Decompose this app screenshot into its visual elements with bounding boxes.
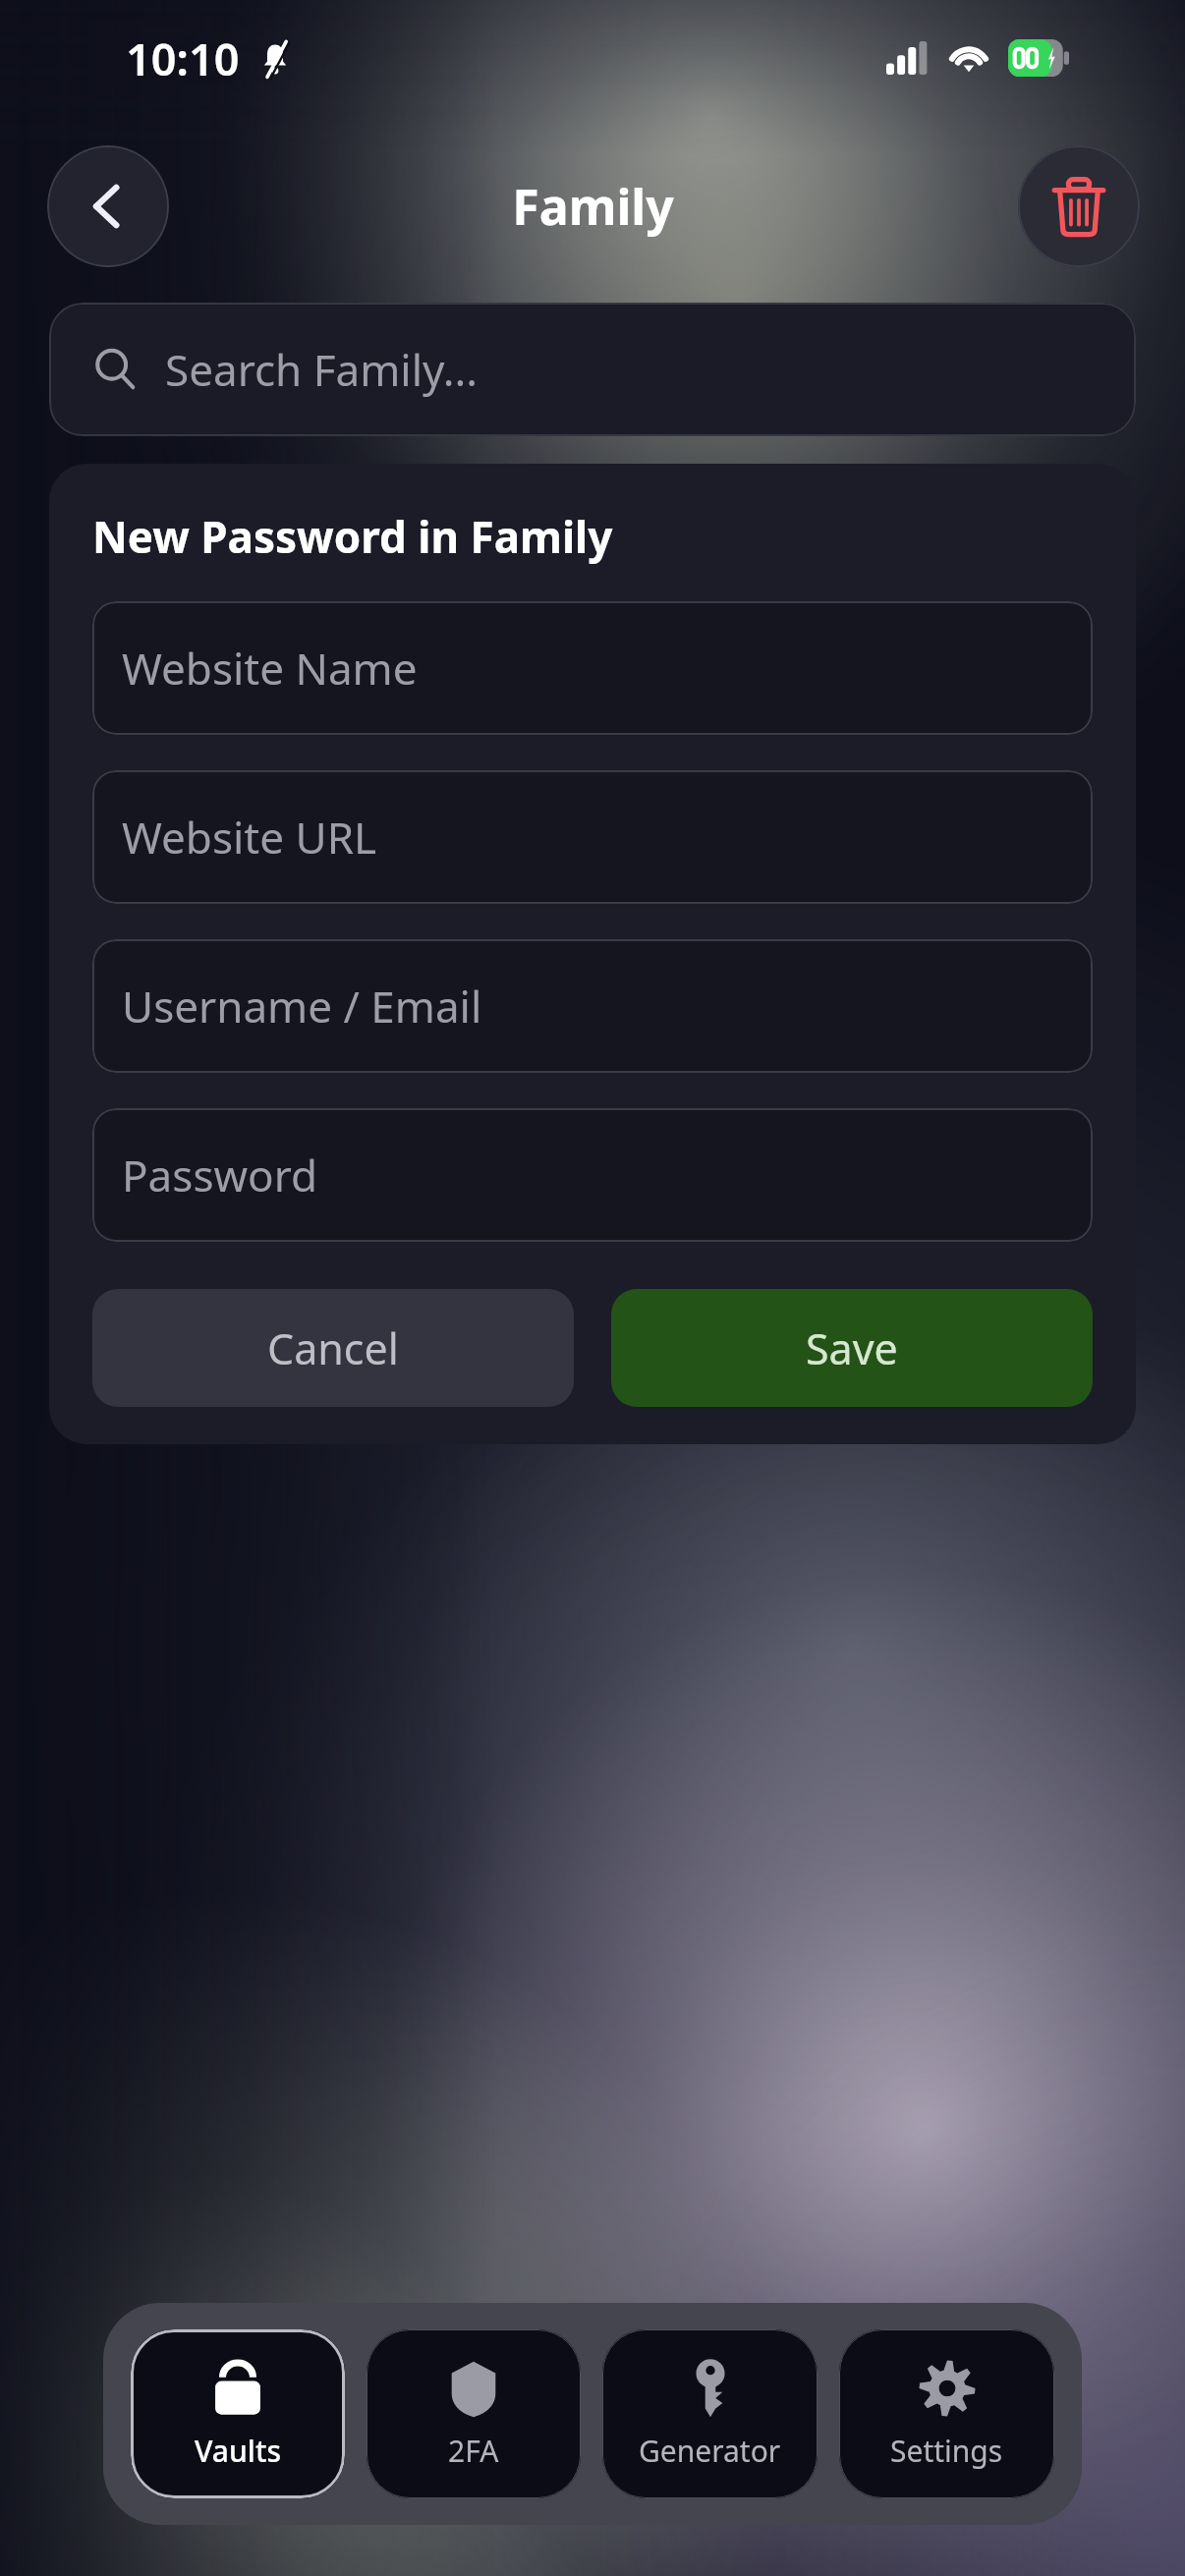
button[interactable]: Website Name xyxy=(92,601,1093,735)
button[interactable]: Save xyxy=(611,1289,1093,1407)
button[interactable]: Username / Email xyxy=(92,939,1093,1073)
button[interactable]: 2FA xyxy=(367,2329,581,2498)
staticText: Search Family... xyxy=(165,340,479,399)
button[interactable]: Back xyxy=(47,145,169,267)
staticText: Settings xyxy=(890,2431,1003,2471)
staticText: Username / Email xyxy=(122,977,482,1036)
staticText: New Password in Family xyxy=(92,507,613,566)
button[interactable]: Settings xyxy=(839,2329,1054,2498)
staticText: Password xyxy=(122,1146,318,1204)
staticText: Vaults xyxy=(195,2431,281,2471)
staticText: Generator xyxy=(639,2431,781,2471)
button[interactable]: Cancel xyxy=(92,1289,574,1407)
staticText: Website Name xyxy=(122,639,418,698)
staticText: Cancel xyxy=(267,1319,399,1377)
button[interactable]: Website URL xyxy=(92,770,1093,904)
button[interactable]: Search Family... xyxy=(49,303,1136,436)
staticText: Website URL xyxy=(122,808,377,867)
button[interactable]: Delete vault xyxy=(1018,145,1140,267)
button[interactable]: Vaults xyxy=(131,2329,345,2498)
button[interactable]: Generator xyxy=(602,2329,818,2498)
staticText: Family xyxy=(512,173,674,240)
staticText: 10:10 xyxy=(126,28,240,88)
staticText: 2FA xyxy=(448,2431,499,2471)
button[interactable]: Password xyxy=(92,1108,1093,1242)
staticText: Save xyxy=(806,1319,898,1377)
